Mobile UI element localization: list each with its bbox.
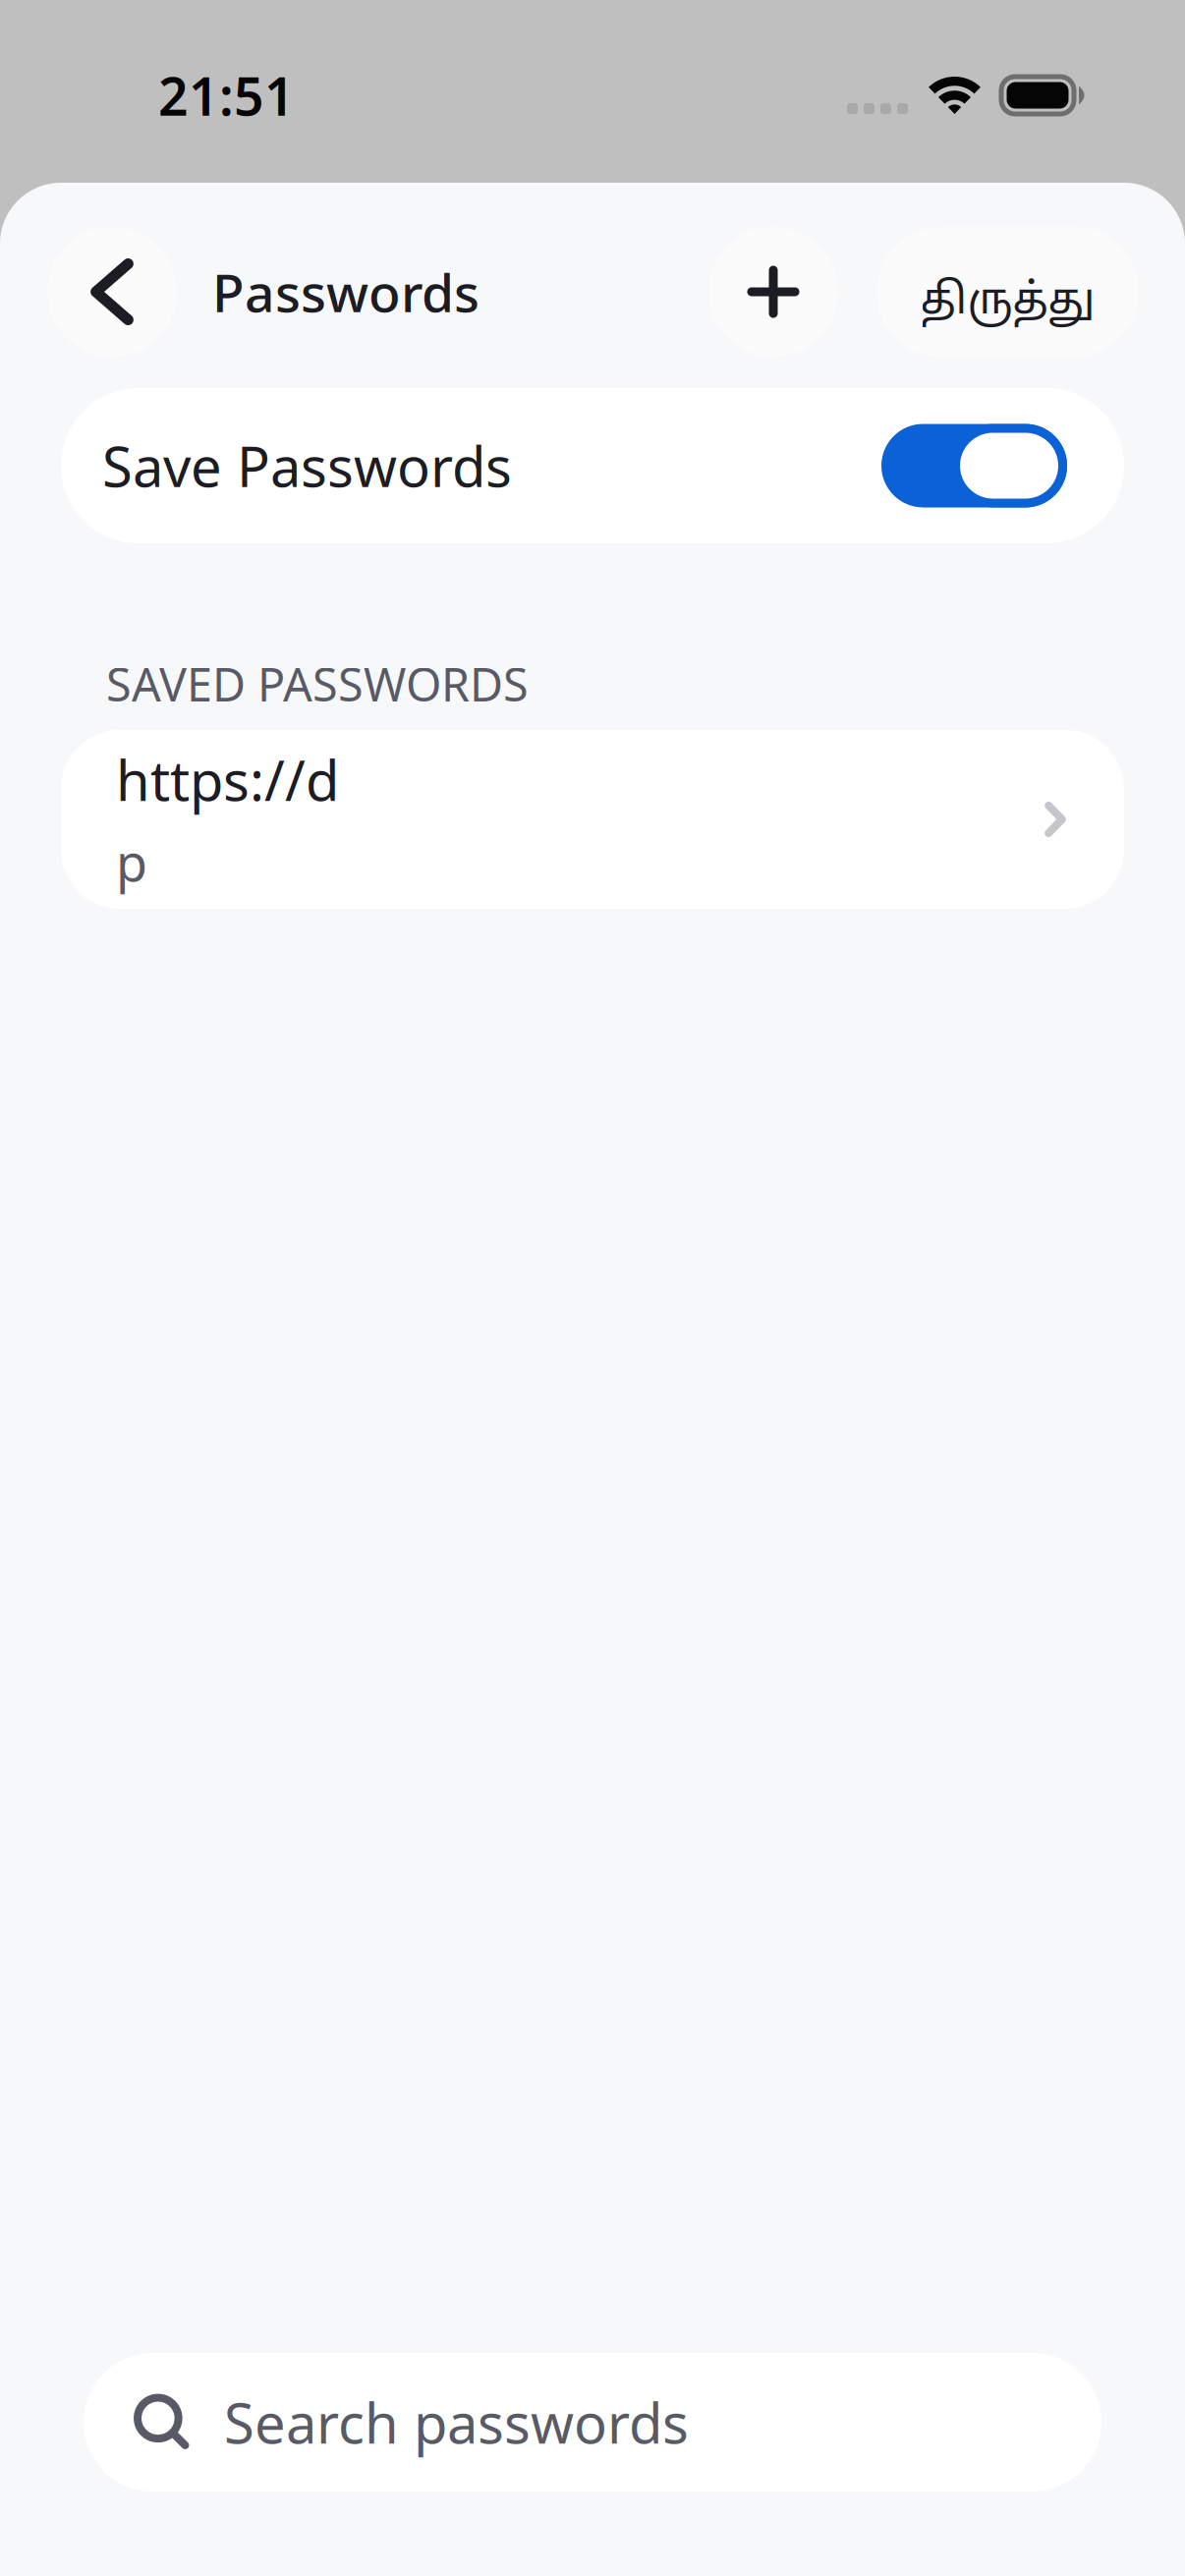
staticText: Passwords (212, 257, 480, 327)
staticText: Save Passwords (102, 429, 512, 502)
button[interactable]: Save Passwords (61, 388, 1124, 543)
staticText: https://d (116, 743, 339, 816)
staticText: திருத்து (920, 276, 1095, 329)
button[interactable]: திருத்து (876, 227, 1139, 357)
staticText: 21:51 (158, 61, 295, 130)
button[interactable]: Back (47, 227, 177, 357)
staticText: p (116, 828, 147, 896)
staticText: SAVED PASSWORDS (106, 653, 529, 714)
staticText: Search passwords (224, 2386, 689, 2459)
button[interactable]: https://d (61, 730, 1124, 909)
button[interactable]: Add password (708, 227, 838, 357)
button[interactable]: Search passwords (84, 2353, 1101, 2492)
